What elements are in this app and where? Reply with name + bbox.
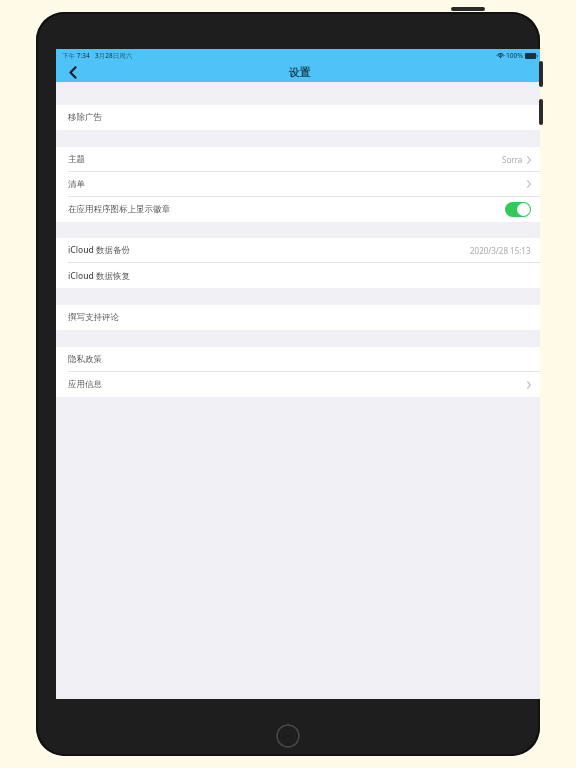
staticText: 2020/3/28 15:13 [470,245,531,256]
staticText: 主题 [68,154,85,165]
staticText: Sorra [502,154,523,165]
button[interactable]: iCloud 数据恢复 [56,263,540,288]
staticText: 隐私政策 [68,354,102,365]
button[interactable]: Back [56,62,90,82]
staticText: 撰写支持评论 [68,312,119,323]
staticText: iCloud 数据备份 [68,244,130,256]
staticText: 下午 7:34 [62,51,90,60]
button[interactable]: 应用信息 [56,372,540,397]
button[interactable]: iCloud 数据备份 [56,238,540,262]
button[interactable]: 主题 [56,147,540,171]
button[interactable]: Show badge on app icon [505,202,531,217]
staticText: 100% [506,51,523,60]
button[interactable]: 移除广告 [56,105,540,130]
staticText: 移除广告 [68,112,102,123]
staticText: 3月28日周六 [95,51,133,60]
button[interactable]: 在应用程序图标上显示徽章 [56,197,540,222]
staticText: iCloud 数据恢复 [68,270,130,282]
staticText: 应用信息 [68,379,102,390]
button[interactable]: 撰写支持评论 [56,305,540,330]
button[interactable]: 清单 [56,172,540,196]
staticText: 设置 [289,66,310,79]
staticText: 在应用程序图标上显示徽章 [68,204,170,215]
button[interactable]: Home [276,724,300,748]
button[interactable]: 隐私政策 [56,347,540,371]
staticText: 清单 [68,179,85,190]
